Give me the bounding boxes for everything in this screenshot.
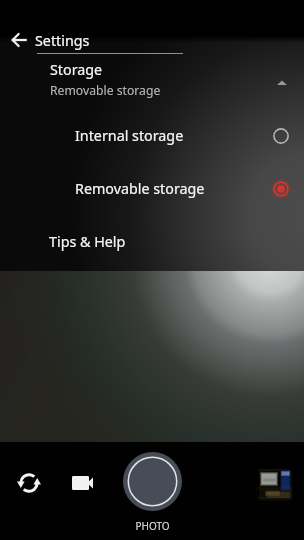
button[interactable]: Switch camera	[13, 467, 45, 499]
button[interactable]: Internal storage	[0, 109, 304, 162]
staticText: Tips & Help	[49, 232, 126, 251]
staticText: Storage	[50, 60, 103, 79]
staticText: PHOTO	[122, 519, 183, 533]
button[interactable]: Back	[0, 28, 32, 52]
button[interactable]: Removable storage	[0, 162, 304, 215]
staticText: Internal storage	[75, 126, 184, 145]
button[interactable]: Open gallery	[254, 465, 296, 503]
staticText: Removable storage	[75, 179, 205, 198]
button[interactable]: Storage	[0, 60, 304, 100]
button[interactable]: Take photo	[123, 452, 182, 511]
staticText: Settings	[35, 31, 90, 50]
button[interactable]: Tips & Help	[0, 218, 304, 264]
button[interactable]: Video mode	[66, 467, 98, 499]
staticText: Removable storage	[50, 82, 161, 99]
